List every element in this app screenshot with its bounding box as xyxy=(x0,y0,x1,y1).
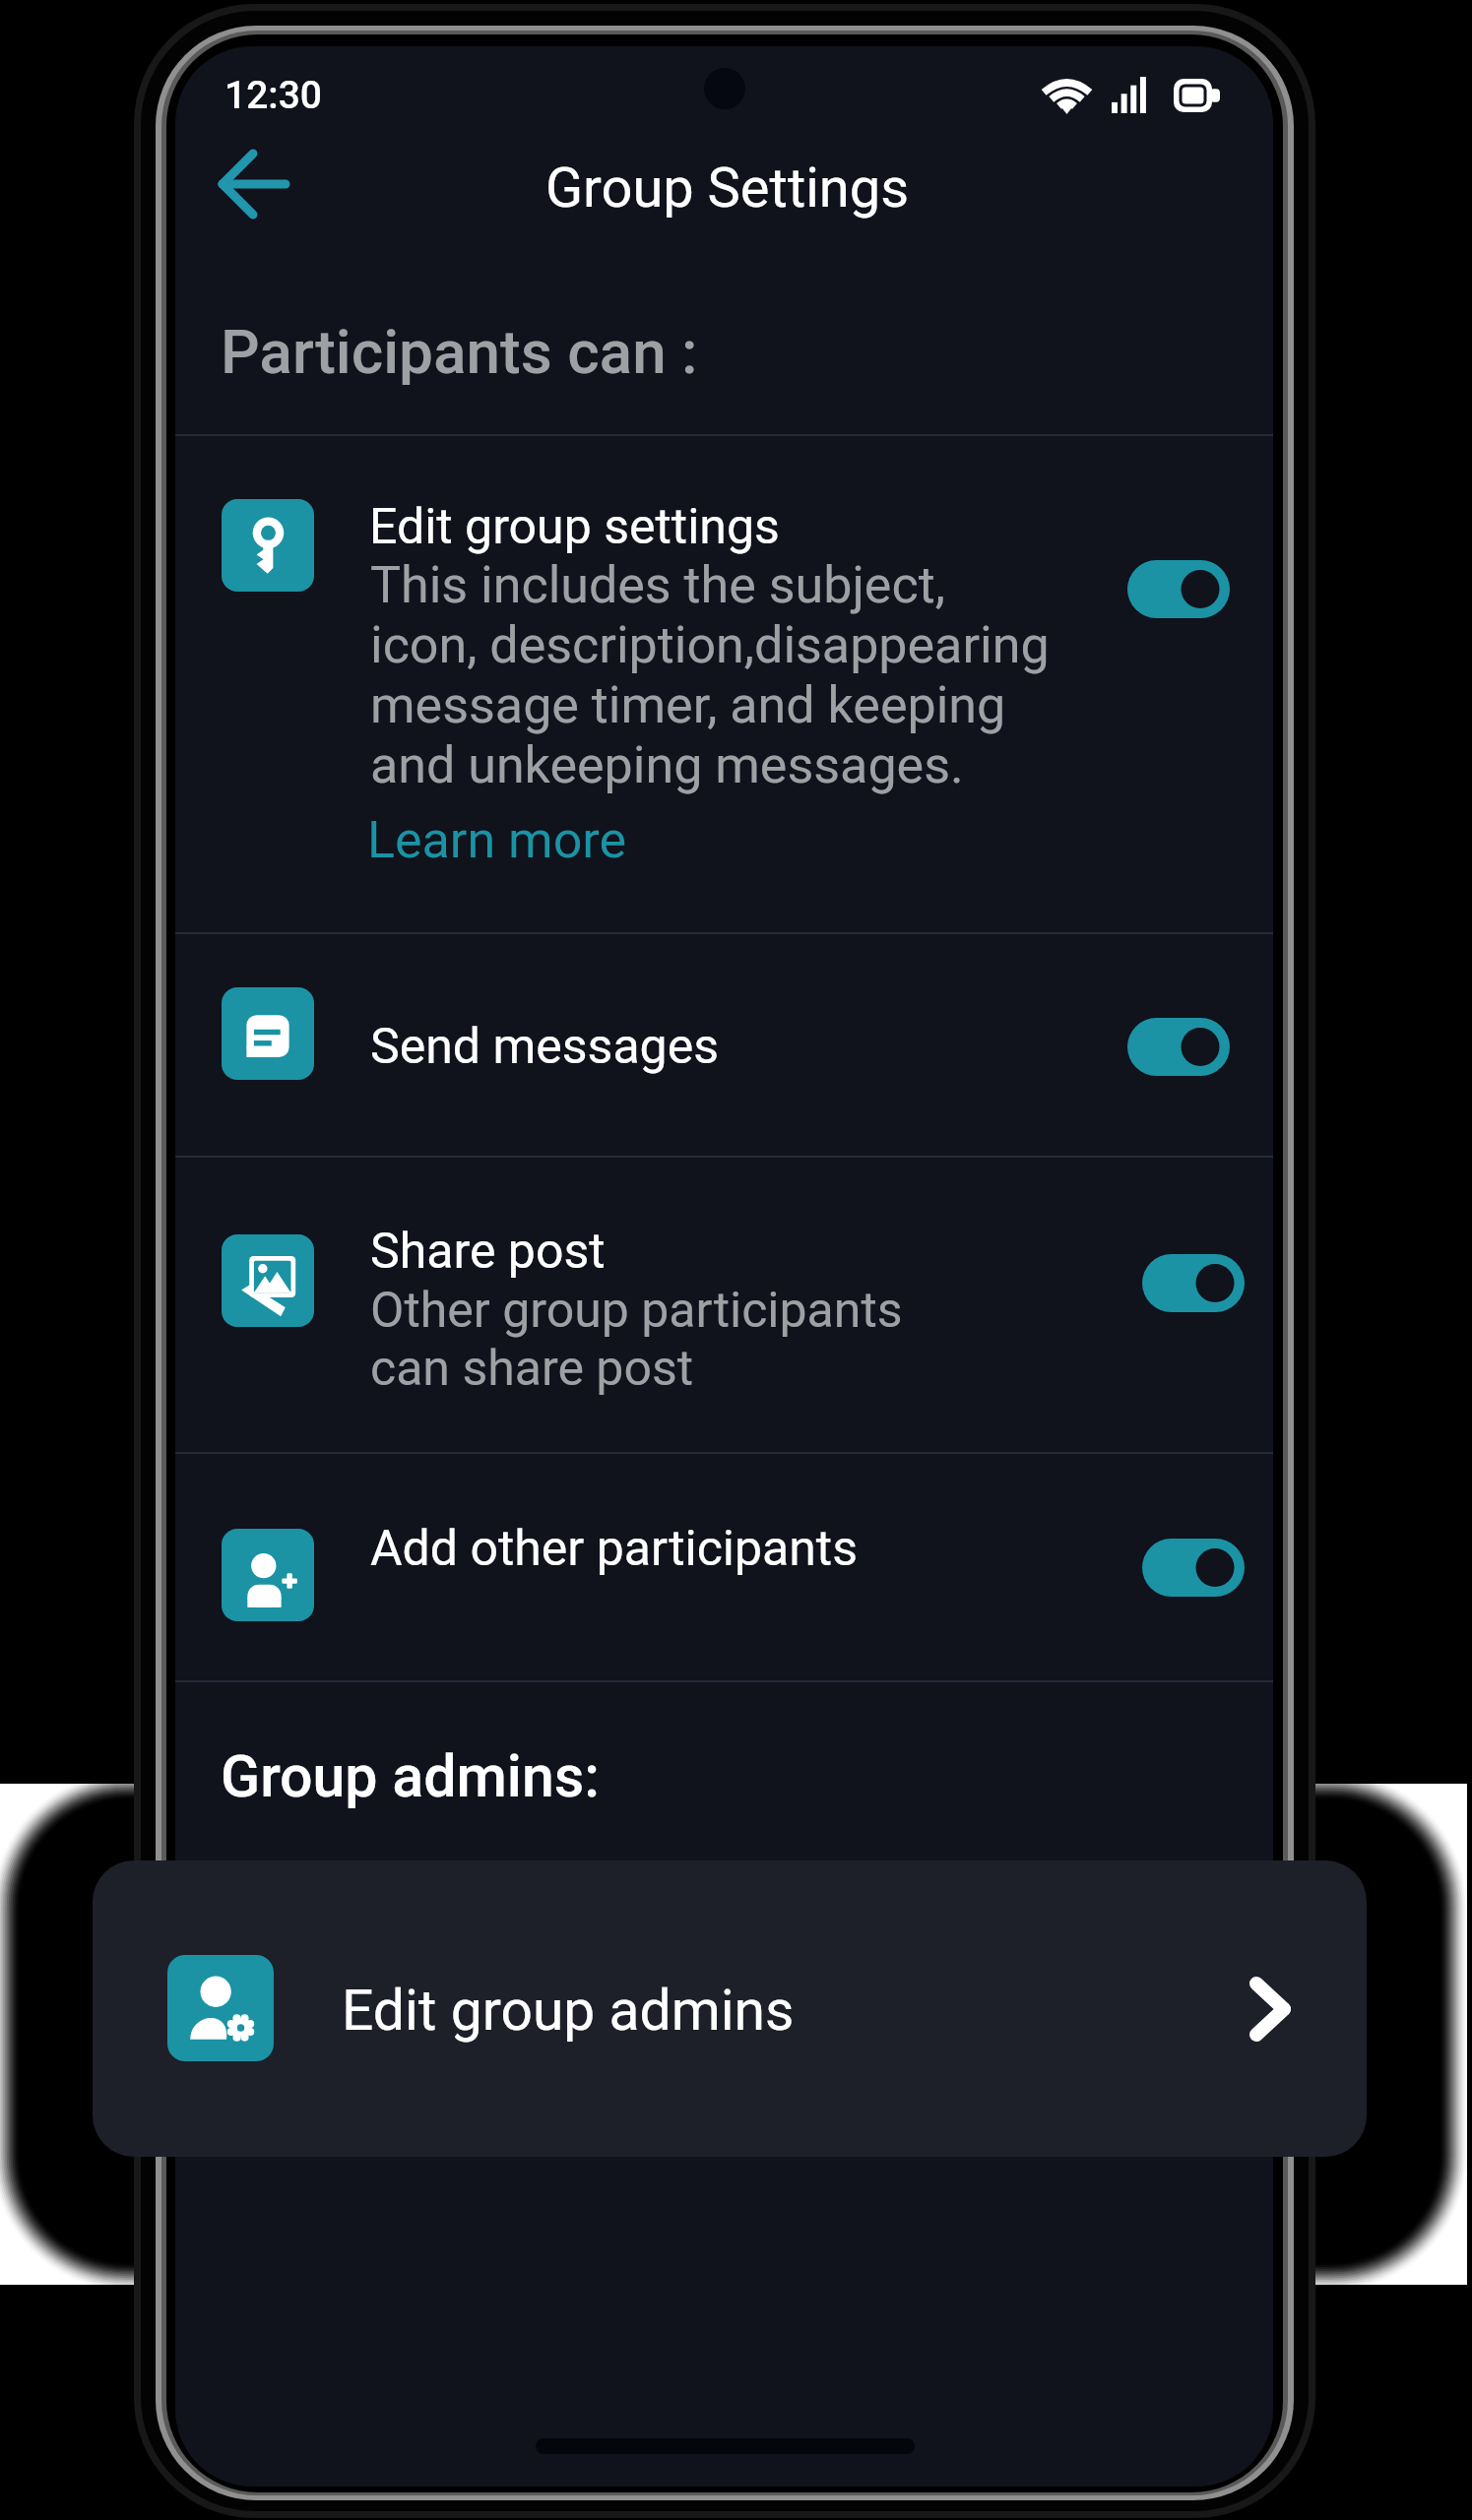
button[interactable]: Share post xyxy=(175,1156,1273,1452)
button[interactable]: Toggle xyxy=(1127,560,1230,618)
staticText: Participants can : xyxy=(221,316,698,388)
staticText: Add other participants xyxy=(370,1520,859,1578)
staticText: 12:30 xyxy=(224,73,323,118)
staticText: This includes the subject, icon, descrip… xyxy=(370,555,1050,795)
button[interactable]: Edit group admins xyxy=(93,1860,1367,2157)
button[interactable]: Toggle xyxy=(1127,1018,1230,1076)
button[interactable]: Toggle xyxy=(1142,1539,1245,1597)
staticText: Other group participants can share post xyxy=(370,1281,903,1397)
button[interactable]: Add other participants xyxy=(175,1452,1273,1680)
button[interactable]: Send messages xyxy=(175,932,1273,1156)
button[interactable]: Edit group settings xyxy=(175,434,1273,932)
staticText: Edit group admins xyxy=(342,1978,795,2044)
other: Open xyxy=(1243,1970,1298,2048)
staticText: Send messages xyxy=(370,1018,719,1076)
button[interactable]: Learn more xyxy=(367,810,627,870)
staticText: Learn more xyxy=(367,810,627,870)
button[interactable]: Back xyxy=(175,111,297,233)
staticText: Group Settings xyxy=(178,156,1273,220)
staticText: Group admins: xyxy=(221,1742,600,1810)
button[interactable]: Toggle xyxy=(1142,1254,1245,1312)
staticText: Share post xyxy=(370,1223,606,1281)
staticText: Edit group settings xyxy=(369,498,780,556)
